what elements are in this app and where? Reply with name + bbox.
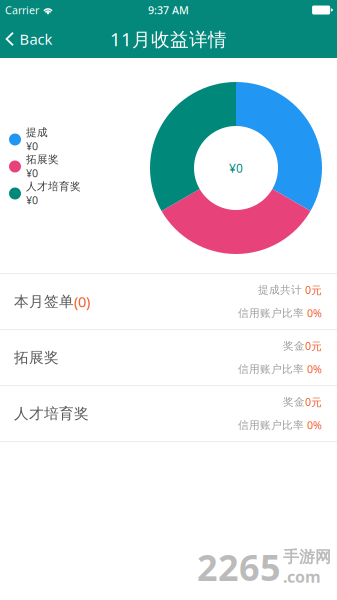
staticText: 奖金 — [283, 339, 305, 352]
staticText: 0% — [307, 418, 322, 432]
staticText: 本月签单 — [14, 292, 74, 310]
staticText: (0) — [74, 292, 90, 311]
staticText: 人才培育奖 — [14, 404, 89, 422]
staticText: 0% — [307, 306, 322, 320]
staticText: 拓展奖 — [26, 153, 59, 166]
staticText: Carrier — [5, 3, 39, 17]
staticText: 0元 — [305, 395, 322, 409]
staticText: 信用账户比率 — [238, 306, 304, 320]
staticText: ¥0 — [26, 139, 38, 153]
staticText: 提成共计 — [258, 283, 302, 296]
staticText: 提成 — [26, 126, 48, 139]
staticText: 信用账户比率 — [238, 362, 304, 376]
staticText: 人才培育奖 — [26, 180, 81, 193]
staticText: 0元 — [305, 283, 322, 297]
staticText: 0元 — [305, 339, 322, 353]
staticText: 拓展奖 — [14, 348, 59, 366]
staticText: 信用账户比率 — [238, 418, 304, 432]
staticText: 11月收益详情 — [110, 27, 227, 51]
staticText: ¥0 — [26, 193, 38, 207]
staticText: 奖金 — [283, 395, 305, 408]
staticText: 9:37 AM — [148, 3, 189, 17]
staticText: ¥0 — [229, 160, 243, 176]
button[interactable]: Back — [0, 20, 60, 58]
button[interactable]: 本月签单 — [0, 274, 337, 330]
staticText: .com — [283, 566, 321, 587]
staticText: 0% — [307, 362, 322, 376]
staticText: 2265 — [197, 543, 281, 591]
button[interactable]: 拓展奖 — [0, 330, 337, 386]
staticText: 手游网 — [283, 547, 331, 567]
staticText: ¥0 — [26, 166, 38, 180]
button[interactable]: 人才培育奖 — [0, 386, 337, 442]
staticText: Back — [19, 29, 52, 49]
